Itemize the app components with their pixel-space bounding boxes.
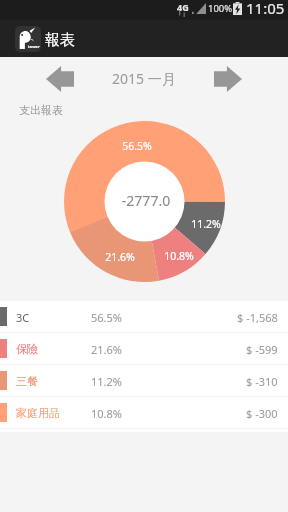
staticText: 11.2% <box>91 374 122 389</box>
staticText: 21.6% <box>98 250 142 264</box>
staticText: 三餐 <box>16 374 38 388</box>
staticText: 21.6% <box>91 342 122 357</box>
staticText: 家庭用品 <box>16 406 60 420</box>
staticText: 100% <box>208 2 233 15</box>
button[interactable]: 3C <box>0 301 288 333</box>
button[interactable]: Next month <box>214 66 242 92</box>
staticText: tower <box>28 44 40 49</box>
staticText: 11:05 <box>246 0 285 18</box>
staticText: 4G <box>177 1 189 13</box>
staticText: 2015 一月 <box>112 69 176 88</box>
staticText: 3C <box>16 310 30 325</box>
staticText: -2777.0 <box>106 191 186 207</box>
staticText: 支出報表 <box>19 103 63 117</box>
staticText: 56.5% <box>91 310 122 325</box>
staticText: $ -300 <box>246 406 278 421</box>
staticText: $ -310 <box>246 374 278 389</box>
staticText: $ -1,568 <box>237 310 278 325</box>
staticText: 56.5% <box>115 139 159 153</box>
staticText: 保險 <box>16 342 38 356</box>
button[interactable]: 家庭用品 <box>0 397 288 429</box>
button[interactable]: Previous month <box>46 66 74 92</box>
staticText: 10.8% <box>157 249 201 263</box>
button[interactable]: 保險 <box>0 333 288 365</box>
button[interactable]: 三餐 <box>0 365 288 397</box>
staticText: 11.2% <box>184 217 228 231</box>
staticText: $ -599 <box>246 342 278 357</box>
staticText: 10.8% <box>91 406 122 421</box>
button[interactable]: Open navigation <box>15 26 41 52</box>
staticText: 報表 <box>45 31 75 50</box>
